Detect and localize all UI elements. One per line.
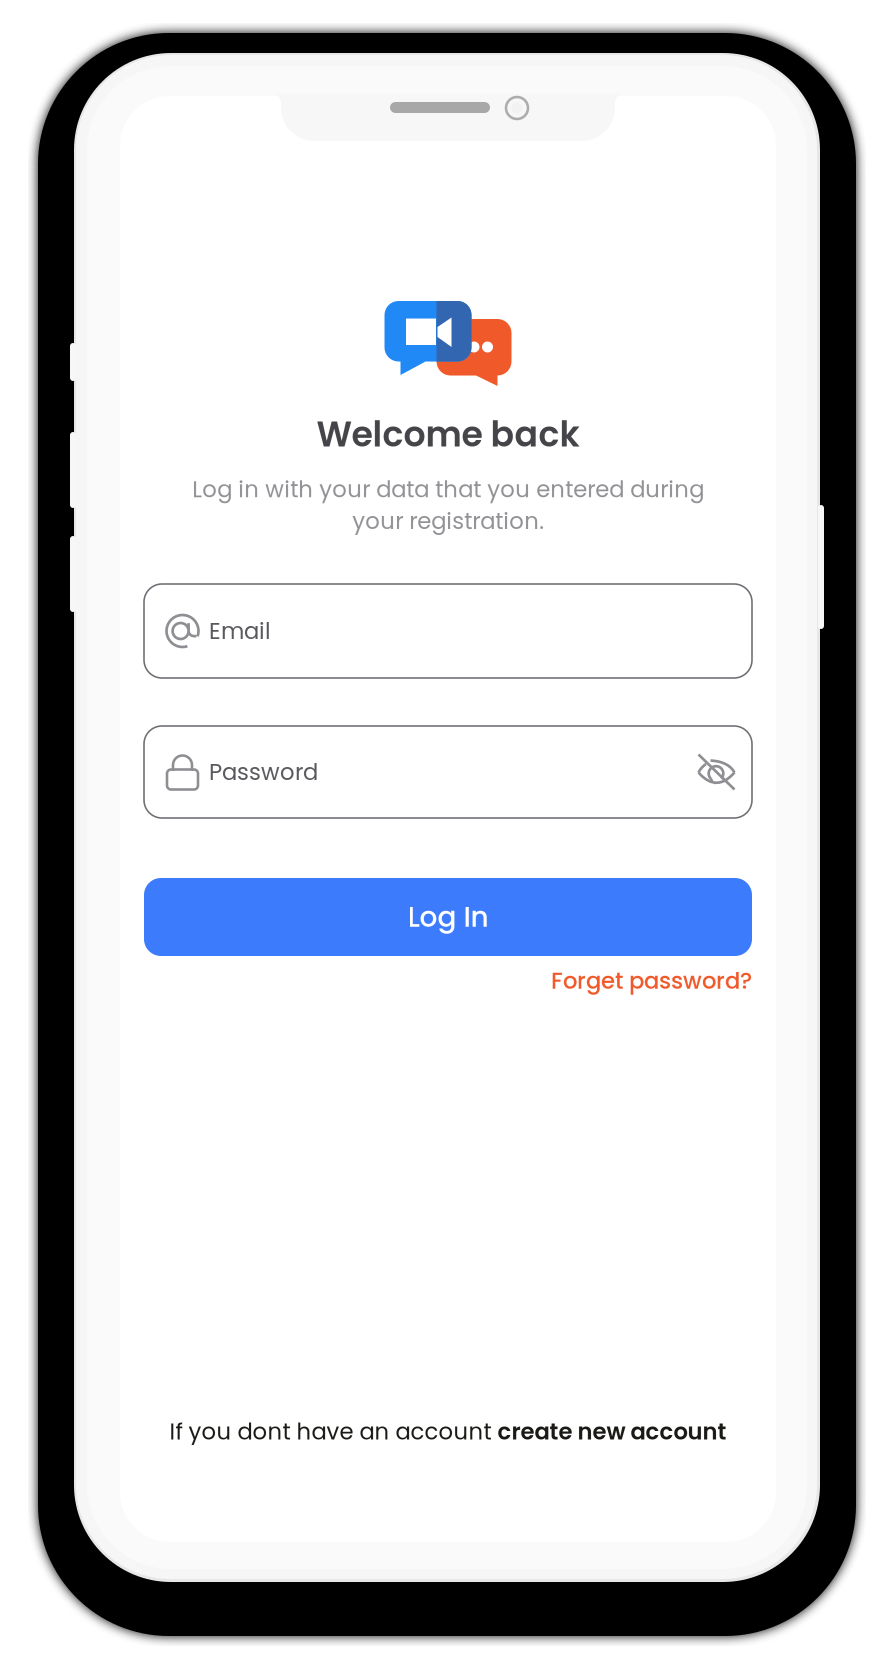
button[interactable]: Forget password? [551, 965, 752, 997]
button[interactable]: Log In [144, 878, 752, 956]
button[interactable]: If you dont have an account create new a… [169, 1416, 726, 1447]
staticText: Log In [407, 897, 488, 937]
staticText: Email [209, 615, 271, 647]
staticText: Welcome back [316, 410, 579, 458]
button[interactable]: Password [144, 726, 752, 818]
staticText: Forget password? [551, 965, 752, 997]
staticText: Password [209, 756, 318, 788]
button[interactable]: Email [144, 584, 752, 678]
staticText: If you dont have an account create new a… [169, 1416, 726, 1447]
staticText: Log in with your data that you entered d… [192, 473, 704, 537]
